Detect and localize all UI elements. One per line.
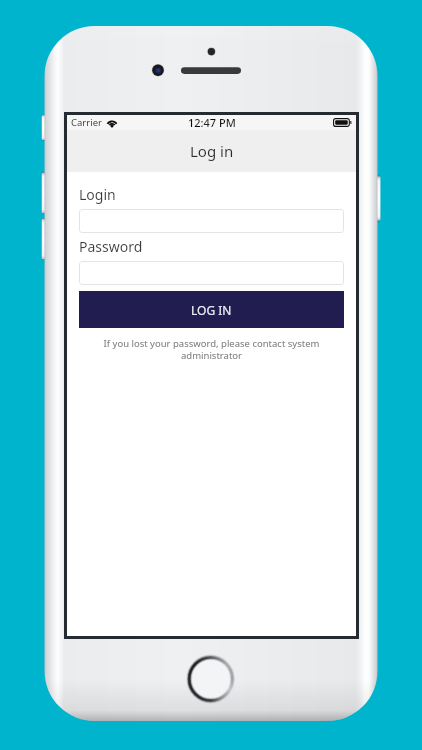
button[interactable]: LOG IN [79, 291, 344, 328]
staticText: Log in [190, 141, 234, 161]
staticText: Carrier [71, 116, 102, 129]
button[interactable] [79, 261, 344, 285]
staticText: LOG IN [191, 302, 232, 318]
staticText: 12:47 PM [188, 115, 236, 130]
staticText: If you lost your password, please contac… [93, 337, 330, 361]
staticText: Password [79, 237, 143, 256]
staticText: Login [79, 185, 116, 204]
button[interactable] [79, 209, 344, 233]
